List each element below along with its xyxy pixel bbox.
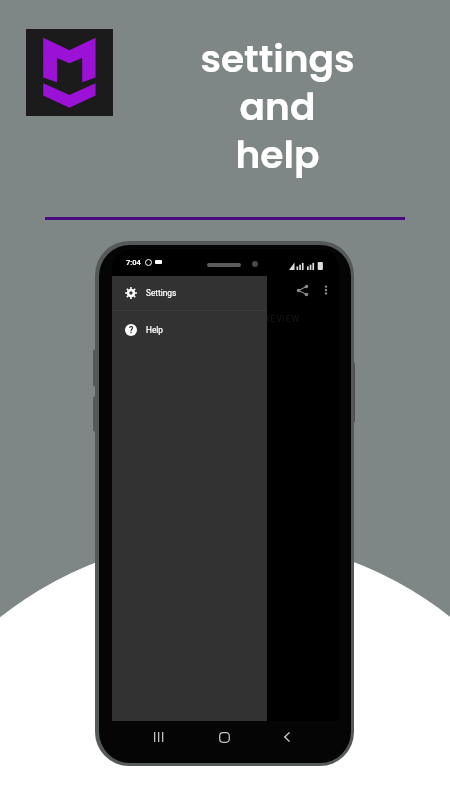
staticText: ?	[129, 325, 134, 336]
button[interactable]: More options	[315, 279, 337, 301]
staticText: settings and help	[200, 33, 355, 181]
staticText: PREVIEW	[258, 314, 300, 324]
button[interactable]: Settings	[112, 276, 267, 310]
staticText: Help	[146, 325, 163, 335]
staticText: 7:04	[126, 258, 141, 267]
button[interactable]: ?	[112, 311, 267, 348]
button[interactable]: Share	[291, 279, 313, 301]
button[interactable]: Home	[210, 723, 238, 751]
button[interactable]: Recent apps	[145, 723, 173, 751]
button[interactable]: App logo	[26, 29, 113, 116]
button[interactable]: Back	[273, 723, 301, 751]
staticText: Settings	[146, 288, 177, 298]
